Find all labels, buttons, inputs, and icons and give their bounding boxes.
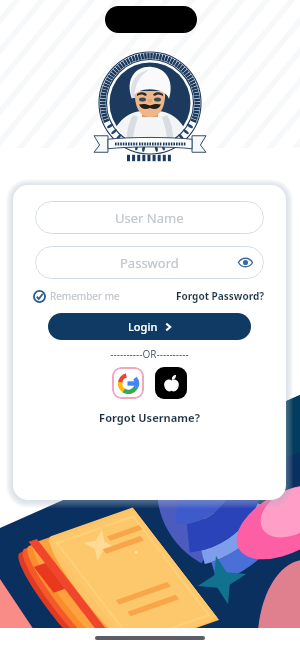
staticText: ----------OR---------- bbox=[13, 347, 286, 361]
button[interactable]: Password bbox=[35, 246, 264, 279]
staticText: Remember me bbox=[50, 289, 120, 303]
button[interactable]: Forgot Password? bbox=[176, 289, 265, 303]
button[interactable]: Remember me bbox=[33, 289, 120, 303]
button[interactable]: User Name bbox=[35, 201, 264, 234]
button[interactable]: Login bbox=[48, 313, 251, 340]
button[interactable]: Sign in with Apple bbox=[155, 367, 187, 399]
button[interactable]: Forgot Username? bbox=[13, 410, 286, 425]
staticText: Login bbox=[128, 319, 158, 334]
staticText: User Name bbox=[115, 209, 184, 227]
button[interactable]: Show password bbox=[238, 255, 253, 270]
button[interactable]: Sign in with Google bbox=[112, 367, 144, 399]
staticText: Password bbox=[120, 254, 179, 272]
